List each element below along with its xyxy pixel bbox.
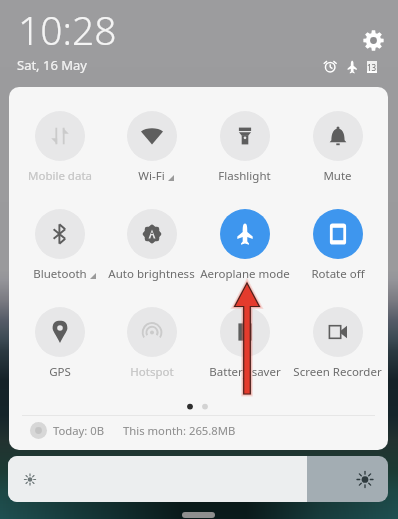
button[interactable]: Rotate off — [291, 185, 384, 280]
staticText: 10:28 — [18, 3, 117, 56]
staticText: Mute — [323, 168, 352, 184]
button[interactable]: Wi-Fi — [105, 87, 198, 182]
staticText: Rotate off — [311, 266, 365, 282]
button[interactable]: Aeroplane mode — [198, 185, 291, 280]
staticText: 13 — [367, 62, 377, 73]
staticText: Sat, 16 May — [17, 56, 87, 74]
staticText: Bluetooth — [33, 266, 87, 282]
staticText: Battery saver — [209, 364, 281, 380]
button[interactable]: Flashlight — [198, 87, 291, 182]
staticText: Mobile data — [28, 168, 92, 184]
button[interactable]: GPS — [13, 283, 106, 378]
staticText: Screen Recorder — [293, 364, 382, 380]
staticText: Today: 0B — [53, 423, 105, 438]
button[interactable]: Battery saver — [198, 283, 291, 378]
button[interactable]: Settings — [363, 30, 384, 51]
staticText: GPS — [49, 364, 71, 380]
button[interactable]: Bluetooth — [13, 185, 106, 280]
staticText: This month: 265.8MB — [123, 423, 236, 438]
staticText: Auto brightness — [108, 266, 195, 282]
staticText: Aeroplane mode — [200, 266, 290, 282]
staticText: Wi-Fi — [138, 168, 165, 184]
staticText: Flashlight — [218, 168, 271, 184]
button[interactable]: Auto brightness — [105, 185, 198, 280]
button[interactable]: Mute — [291, 87, 384, 182]
button[interactable]: Hotspot — [105, 283, 198, 378]
staticText: Hotspot — [130, 364, 174, 380]
button[interactable]: Screen Recorder — [291, 283, 384, 378]
button[interactable]: Mobile data — [13, 87, 106, 182]
button[interactable]: Brightness slider — [8, 456, 388, 502]
